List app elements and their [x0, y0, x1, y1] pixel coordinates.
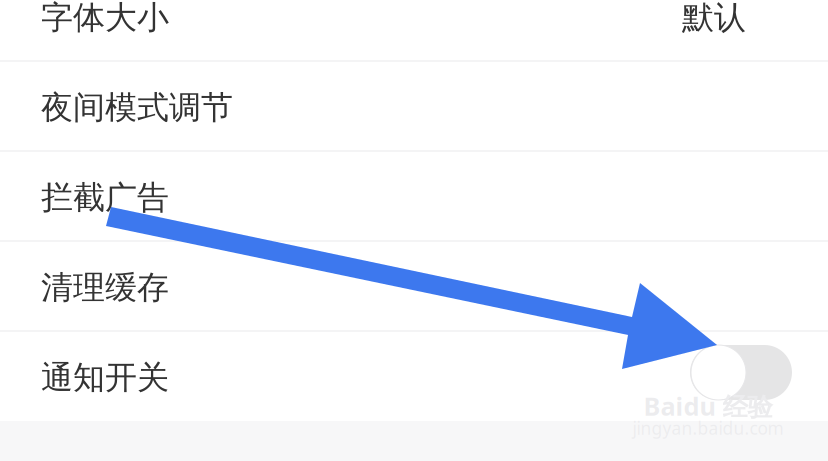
staticText: jingyan.baidu.com — [632, 416, 783, 439]
staticText: 默认 — [682, 0, 746, 37]
button[interactable]: Notification switch, off — [690, 345, 792, 400]
staticText: 清理缓存 — [41, 268, 169, 307]
staticText: Baidu 经验 — [643, 389, 772, 423]
button[interactable]: 字体大小 — [0, 0, 828, 61]
button[interactable]: 拦截广告 — [0, 151, 828, 241]
button[interactable]: 通知开关 — [0, 331, 828, 421]
button[interactable]: 夜间模式调节 — [0, 61, 828, 151]
staticText: 字体大小 — [41, 0, 169, 37]
button[interactable]: 清理缓存 — [0, 241, 828, 331]
staticText: 通知开关 — [41, 358, 169, 397]
staticText: 夜间模式调节 — [41, 88, 233, 127]
staticText: 拦截广告 — [41, 178, 169, 217]
